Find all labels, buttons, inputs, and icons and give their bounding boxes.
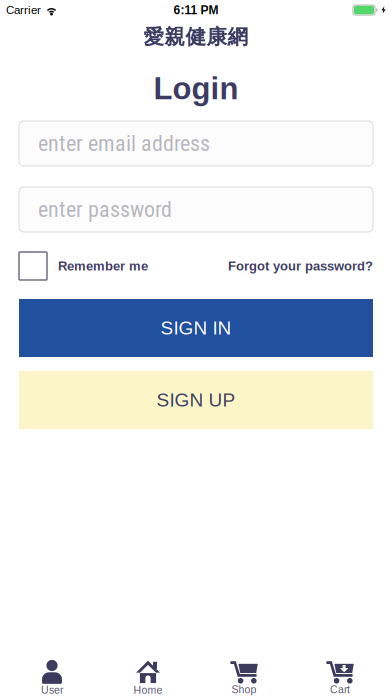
staticText: SIGN UP xyxy=(156,389,235,411)
staticText: 6:11 PM xyxy=(173,3,218,17)
button[interactable]: Shop xyxy=(196,660,292,695)
staticText: enter password xyxy=(38,197,172,222)
staticText: User xyxy=(41,684,63,696)
staticText: Shop xyxy=(231,684,256,695)
button[interactable]: SIGN UP xyxy=(19,371,373,429)
staticText: Cart xyxy=(330,684,350,695)
button[interactable]: Cart xyxy=(292,660,388,695)
staticText: Login xyxy=(153,71,238,106)
staticText: SIGN IN xyxy=(160,317,231,339)
staticText: Carrier xyxy=(6,4,41,16)
staticText: enter email address xyxy=(38,131,210,156)
button[interactable]: enter password xyxy=(19,187,373,232)
staticText: Remember me xyxy=(58,259,148,273)
button[interactable]: Forgot your password? xyxy=(228,259,373,273)
button[interactable]: SIGN IN xyxy=(19,299,373,357)
button[interactable]: User xyxy=(4,659,100,696)
button[interactable]: Remember me xyxy=(19,252,148,280)
button[interactable]: enter email address xyxy=(19,121,373,166)
staticText: Forgot your password? xyxy=(228,259,373,273)
button[interactable]: Home xyxy=(100,659,196,696)
staticText: Home xyxy=(133,684,162,696)
staticText: 愛親健康網 xyxy=(143,24,248,50)
